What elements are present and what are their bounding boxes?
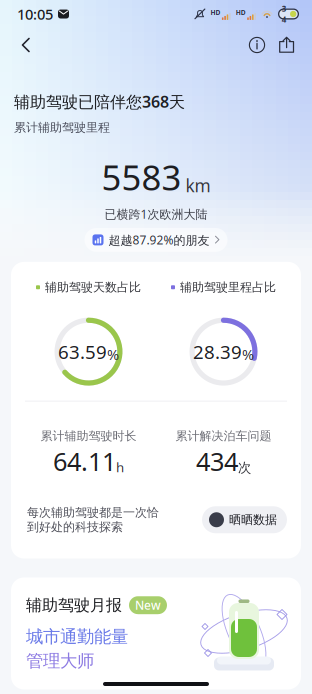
button[interactable]: Info <box>242 30 272 60</box>
button[interactable]: 辅助驾驶月报 <box>11 577 301 689</box>
staticText: 城市通勤能量 <box>26 626 128 647</box>
staticText: h <box>116 458 124 476</box>
staticText: New <box>135 597 161 613</box>
staticText: 63.59 <box>58 339 107 364</box>
staticText: 累计辅助驾驶里程 <box>14 120 110 135</box>
staticText: 64.11 <box>53 444 116 478</box>
button[interactable]: Share <box>272 30 302 60</box>
button[interactable]: 晒晒数据 <box>202 506 287 533</box>
staticText: % <box>242 345 254 364</box>
staticText: % <box>107 345 119 364</box>
staticText: HD <box>210 8 220 17</box>
staticText: 28.39 <box>193 339 242 364</box>
staticText: 次 <box>238 460 251 476</box>
staticText: 辅助驾驶月报 <box>26 595 122 615</box>
staticText: 管理大师 <box>26 650 94 672</box>
staticText: 已横跨1次欧洲大陆 <box>104 206 207 222</box>
staticText: 累计解决泊车问题 <box>175 429 271 443</box>
staticText: 434 <box>196 444 238 478</box>
staticText: 辅助驾驶里程占比 <box>180 280 276 295</box>
staticText: 晒晒数据 <box>229 512 277 527</box>
staticText: 5583 <box>101 154 181 200</box>
staticText: km <box>185 174 210 197</box>
staticText: 累计辅助驾驶时长 <box>40 429 136 443</box>
staticText: 34 <box>282 3 287 25</box>
staticText: HD <box>236 8 246 17</box>
staticText: 10:05 <box>17 4 53 24</box>
staticText: 辅助驾驶已陪伴您368天 <box>14 91 185 112</box>
staticText: 辅助驾驶天数占比 <box>45 280 141 295</box>
button[interactable]: 超越87.92%的朋友 <box>84 228 227 252</box>
staticText: 每次辅助驾驶都是一次恰到好处的科技探索 <box>27 505 159 534</box>
button[interactable]: Back <box>10 29 42 61</box>
staticText: 超越87.92%的朋友 <box>108 232 209 248</box>
